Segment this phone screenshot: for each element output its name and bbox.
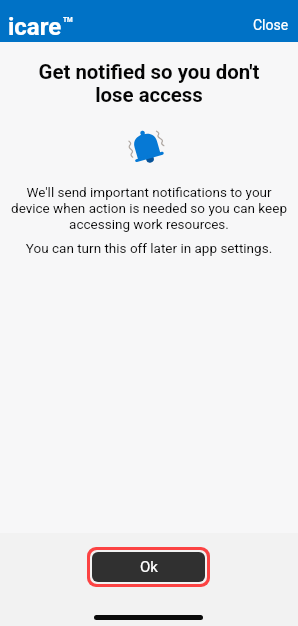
staticText: icare <box>8 13 62 41</box>
staticText: Ok <box>140 558 158 576</box>
staticText: We'll send important notifications to yo… <box>9 184 289 232</box>
staticText: Get notified so you don't lose access <box>14 60 284 107</box>
staticText: TM <box>63 16 73 24</box>
staticText: You can turn this off later in app setti… <box>9 240 289 256</box>
button[interactable]: Close <box>244 9 298 41</box>
staticText: Close <box>253 17 289 33</box>
button[interactable]: Ok <box>92 552 205 582</box>
